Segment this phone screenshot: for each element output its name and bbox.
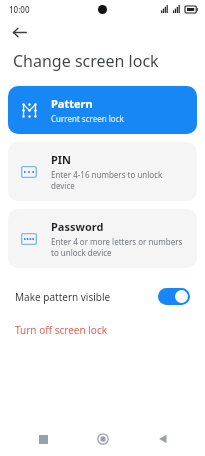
staticText: Make pattern visible xyxy=(15,290,158,304)
button[interactable]: Home xyxy=(84,422,122,456)
staticText: Turn off screen lock xyxy=(15,323,108,337)
button[interactable]: Turn off screen lock xyxy=(0,319,205,341)
button[interactable]: Make pattern visible xyxy=(0,284,205,309)
button[interactable]: Pattern xyxy=(8,86,197,134)
button[interactable]: Back xyxy=(6,19,32,45)
button[interactable]: Back xyxy=(144,422,182,456)
staticText: PIN xyxy=(51,152,72,167)
staticText: Password xyxy=(51,219,104,234)
button[interactable]: Recent apps xyxy=(24,422,62,456)
button[interactable]: PIN xyxy=(8,142,197,201)
staticText: Change screen lock xyxy=(13,50,159,72)
staticText: Enter 4 or more letters or numbers to un… xyxy=(51,236,187,258)
staticText: Enter 4-16 numbers to unlock device xyxy=(51,169,187,191)
staticText: 10:00 xyxy=(9,4,30,15)
button[interactable]: Password xyxy=(8,209,197,268)
staticText: Current screen lock xyxy=(51,113,124,124)
staticText: Pattern xyxy=(51,96,93,111)
